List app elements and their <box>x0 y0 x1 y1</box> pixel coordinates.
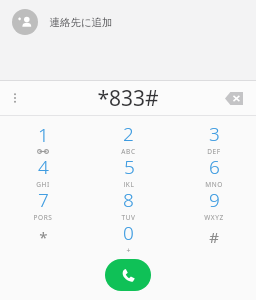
staticText: PQRS <box>33 213 53 220</box>
staticText: GHI <box>36 180 50 187</box>
staticText: 5 <box>124 154 135 180</box>
staticText: MNO <box>205 180 223 187</box>
staticText: # <box>209 227 219 247</box>
staticText: 3 <box>209 121 220 147</box>
staticText: DEF <box>207 147 221 154</box>
button[interactable]: 7 <box>0 187 86 220</box>
button[interactable]: 4 <box>0 154 86 187</box>
button[interactable]: 1 <box>0 121 86 154</box>
staticText: 1 <box>38 122 49 148</box>
button[interactable]: 3 <box>171 121 256 154</box>
button[interactable]: 0 <box>86 220 171 253</box>
staticText: WXYZ <box>204 213 224 220</box>
staticText: 7 <box>38 187 49 213</box>
staticText: JKL <box>123 180 135 187</box>
button[interactable]: More options <box>0 83 30 113</box>
staticText: TUV <box>121 213 136 220</box>
button[interactable]: 6 <box>171 154 256 187</box>
staticText: + <box>126 246 131 253</box>
staticText: * <box>39 227 48 247</box>
staticText: 6 <box>209 154 220 180</box>
staticText: 連絡先に追加 <box>49 16 113 29</box>
button[interactable]: 9 <box>171 187 256 220</box>
staticText: 2 <box>123 121 134 147</box>
staticText: *833# <box>97 84 159 113</box>
staticText: ABC <box>121 147 136 154</box>
button[interactable]: Backspace <box>220 84 248 112</box>
button[interactable]: * <box>0 220 86 253</box>
button[interactable]: 8 <box>86 187 171 220</box>
button[interactable]: Call <box>105 259 151 291</box>
staticText: 4 <box>38 154 49 180</box>
button[interactable]: # <box>171 220 256 253</box>
staticText: 8 <box>123 187 134 213</box>
staticText: 9 <box>209 187 220 213</box>
button[interactable]: 2 <box>86 121 171 154</box>
button[interactable]: 5 <box>86 154 171 187</box>
button[interactable]: 連絡先に追加 <box>0 0 256 44</box>
staticText: 0 <box>123 220 134 246</box>
